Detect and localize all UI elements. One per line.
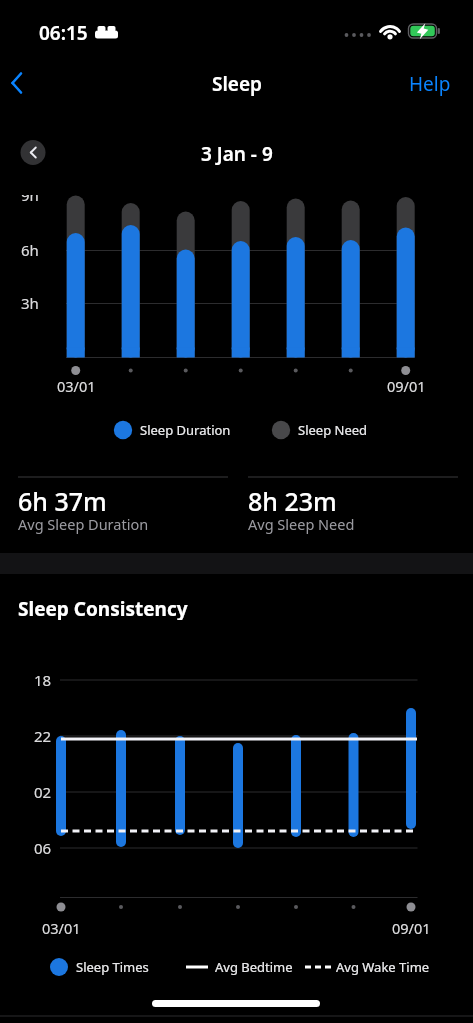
staticText: 8h 23m [248, 484, 337, 512]
button[interactable] [20, 140, 46, 166]
button[interactable] [4, 64, 36, 102]
staticText: Sleep Duration [140, 421, 231, 439]
staticText: 06 [34, 838, 52, 858]
staticText: Avg Bedtime [215, 958, 293, 976]
button[interactable]: Help [398, 68, 462, 100]
staticText: 06:15 [39, 20, 88, 42]
staticText: 02 [34, 782, 52, 802]
staticText: Sleep [212, 71, 262, 97]
staticText: 6h [21, 240, 39, 260]
staticText: Avg Sleep Need [248, 514, 355, 534]
staticText: Sleep Consistency [18, 596, 188, 620]
staticText: 3 Jan - 9 [201, 141, 273, 165]
staticText: 3h [21, 293, 39, 313]
staticText: Avg Sleep Duration [18, 514, 149, 534]
staticText: Avg Wake Time [336, 958, 430, 976]
staticText: Sleep Need [298, 421, 368, 439]
staticText: 18 [34, 670, 52, 690]
staticText: 6h 37m [18, 484, 107, 512]
staticText: Help [409, 71, 451, 97]
staticText: 9h [21, 185, 39, 205]
staticText: 09/01 [387, 376, 426, 396]
staticText: Sleep Times [76, 958, 149, 976]
staticText: 09/01 [392, 918, 431, 938]
staticText: 22 [34, 726, 52, 746]
staticText: 03/01 [42, 918, 81, 938]
staticText: 03/01 [57, 376, 96, 396]
